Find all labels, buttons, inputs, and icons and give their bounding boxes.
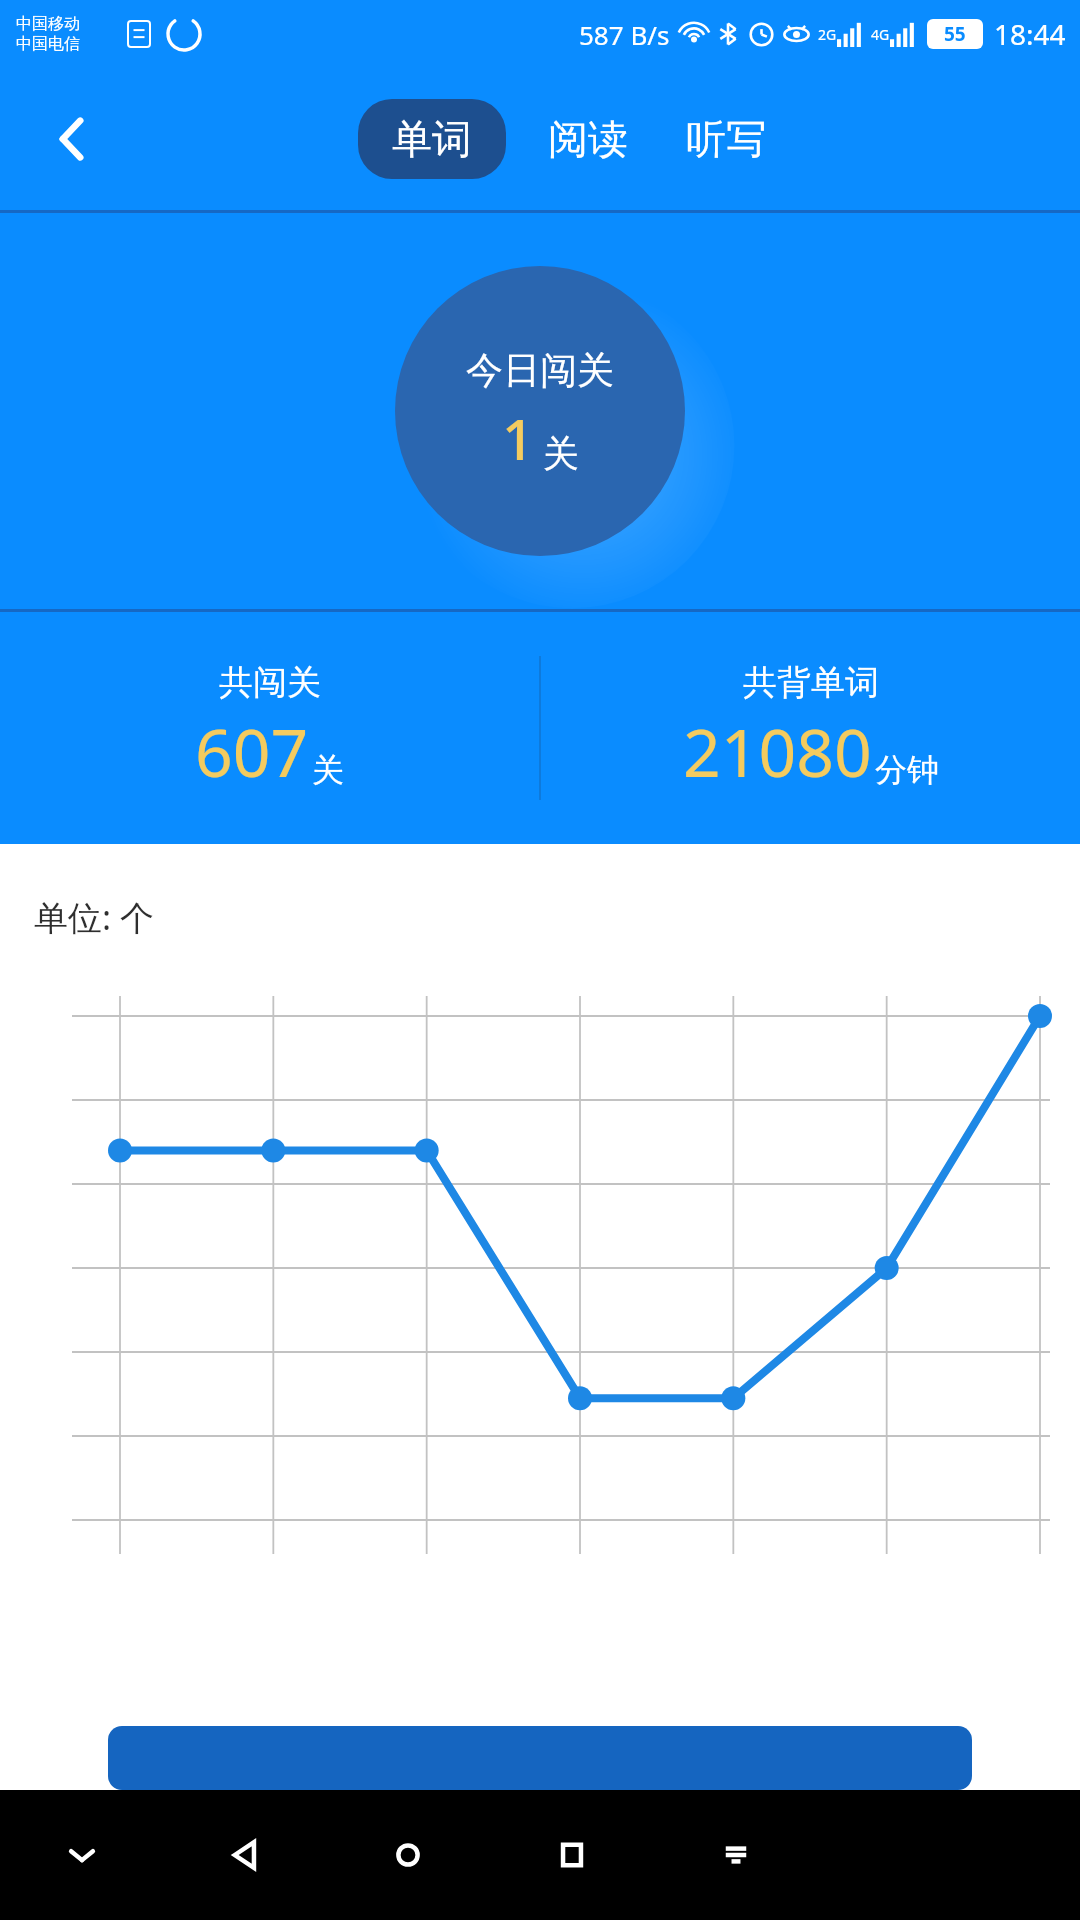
- staticText: 关: [543, 431, 579, 476]
- button[interactable]: 共闯关: [0, 612, 539, 844]
- staticText: 中国移动: [16, 14, 80, 34]
- staticText: 共闯关: [219, 661, 321, 704]
- staticText: 587 B/s: [579, 17, 670, 52]
- staticText: 单词: [392, 114, 472, 164]
- button[interactable]: [108, 1726, 972, 1790]
- button[interactable]: 共背单词: [541, 612, 1080, 844]
- staticText: 55: [944, 21, 966, 47]
- button[interactable]: Back: [34, 101, 110, 177]
- staticText: 单位: 个: [34, 894, 154, 940]
- button[interactable]: 听写: [670, 99, 782, 179]
- staticText: 607: [195, 706, 309, 796]
- staticText: 阅读: [548, 114, 628, 164]
- staticText: 今日闯关: [466, 347, 614, 394]
- staticText: 中国电信: [16, 34, 80, 54]
- button[interactable]: Hide keyboard: [0, 1790, 163, 1920]
- staticText: 18:44: [994, 15, 1066, 53]
- button[interactable]: More options: [654, 1790, 818, 1920]
- staticText: 1: [502, 400, 535, 476]
- staticText: 关: [312, 750, 344, 790]
- button[interactable]: Recents: [490, 1790, 654, 1920]
- staticText: 2G: [818, 25, 837, 44]
- staticText: 21080: [683, 706, 872, 796]
- button[interactable]: 单词: [358, 99, 506, 179]
- staticText: 共背单词: [743, 661, 879, 704]
- button[interactable]: 今日闯关: [395, 266, 685, 556]
- staticText: 分钟: [875, 750, 939, 790]
- staticText: 4G: [871, 25, 890, 44]
- button[interactable]: 阅读: [532, 99, 644, 179]
- staticText: 听写: [686, 114, 766, 164]
- button[interactable]: Home: [326, 1790, 490, 1920]
- button[interactable]: Back: [163, 1790, 326, 1920]
